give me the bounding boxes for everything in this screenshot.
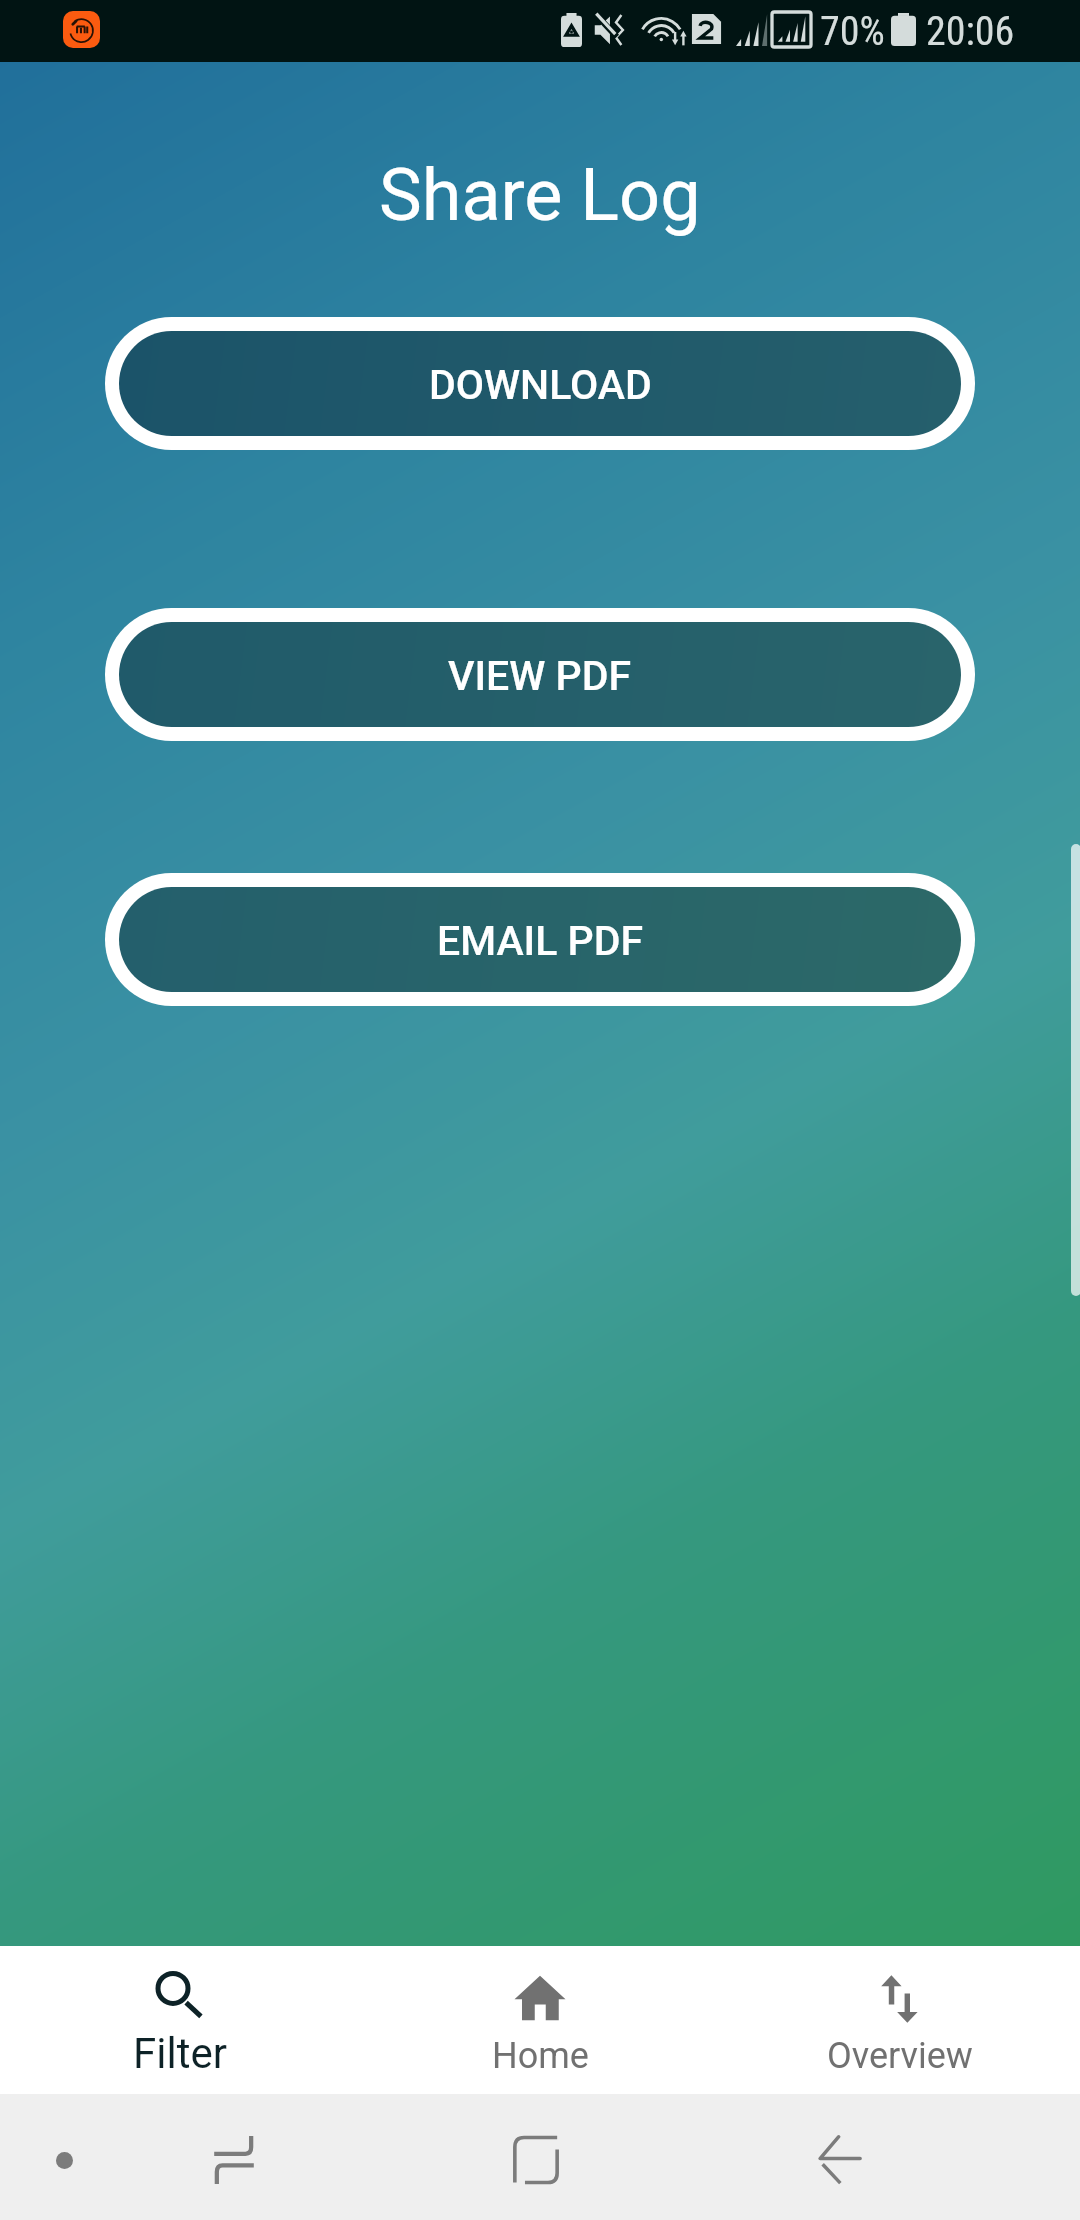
staticText: Filter [133,2029,227,2078]
button[interactable]: VIEW PDF [105,608,975,741]
button[interactable]: Overview [720,1946,1080,2094]
button[interactable]: Filter [0,1946,360,2094]
button[interactable]: Back [792,2112,888,2208]
staticText: VIEW PDF [448,652,632,700]
staticText: Overview [827,2035,973,2077]
staticText: DOWNLOAD [429,361,652,409]
button[interactable]: Home [488,2112,584,2208]
staticText: EMAIL PDF [437,917,644,965]
button[interactable]: DOWNLOAD [105,317,975,450]
staticText: Home [492,2035,589,2077]
button[interactable]: Split screen view [186,2112,282,2208]
staticText: 20:06 [926,8,1015,55]
staticText: Share Log [379,153,701,237]
button[interactable]: Home [360,1946,720,2094]
staticText: 70% [820,8,885,55]
button[interactable]: EMAIL PDF [105,873,975,1006]
